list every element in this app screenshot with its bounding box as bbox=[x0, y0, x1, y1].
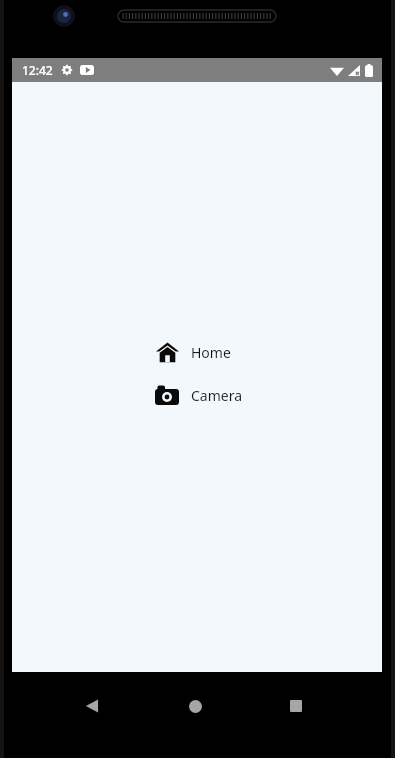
button[interactable]: Home bbox=[179, 690, 211, 722]
button[interactable]: Home bbox=[152, 339, 231, 366]
button[interactable]: Recent apps bbox=[280, 690, 312, 722]
staticText: Home bbox=[191, 343, 231, 362]
staticText: Camera bbox=[191, 386, 243, 405]
button[interactable]: Back bbox=[76, 690, 108, 722]
staticText: 12:42 bbox=[22, 62, 53, 78]
button[interactable]: Camera bbox=[152, 383, 243, 407]
